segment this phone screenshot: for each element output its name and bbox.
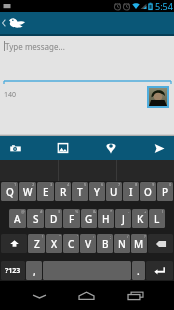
button[interactable]: H — [98, 209, 114, 228]
staticText: A — [14, 212, 21, 226]
button[interactable]: Profile photo — [149, 88, 167, 106]
staticText: J — [122, 212, 125, 226]
staticText: : — [93, 234, 95, 239]
staticText: Type message... — [5, 41, 65, 52]
staticText: " — [59, 234, 61, 239]
staticText: . — [137, 264, 140, 278]
staticText: X — [51, 237, 58, 251]
staticText: ?123 — [5, 266, 21, 276]
staticText: @ — [21, 209, 25, 214]
staticText: & — [93, 209, 96, 214]
staticText: Y — [94, 185, 100, 199]
staticText: F — [69, 212, 75, 226]
staticText: H — [102, 212, 110, 226]
button[interactable]: A — [9, 209, 26, 228]
button[interactable]: Send — [144, 136, 174, 160]
staticText: C — [68, 237, 75, 251]
staticText: P — [162, 185, 169, 199]
staticText: 5:54 — [155, 0, 173, 12]
button[interactable]: P — [157, 182, 173, 201]
button[interactable]: D — [45, 209, 62, 228]
staticText: ? — [144, 234, 146, 239]
button[interactable]: L — [149, 209, 165, 228]
staticText: N — [118, 237, 126, 251]
button[interactable]: S — [27, 209, 44, 228]
button[interactable]: Home — [72, 281, 100, 310]
button[interactable]: V — [80, 234, 96, 253]
button[interactable]: X — [46, 234, 62, 253]
staticText: M — [134, 237, 144, 251]
staticText: / — [127, 234, 129, 239]
button[interactable]: M — [131, 234, 147, 253]
button[interactable]: Back — [25, 281, 53, 310]
staticText: ( — [162, 209, 164, 214]
staticText: W — [23, 185, 33, 199]
staticText: 3 — [50, 182, 53, 187]
button[interactable]: . — [132, 261, 145, 280]
staticText: S — [33, 212, 39, 226]
staticText: B — [102, 237, 109, 251]
staticText: I — [129, 185, 133, 199]
staticText: 7 — [118, 182, 121, 187]
button[interactable]: Photo — [48, 136, 78, 160]
button[interactable]: B — [97, 234, 113, 253]
staticText: D — [50, 212, 58, 226]
staticText: 9 — [152, 182, 155, 187]
button[interactable]: U — [106, 182, 122, 201]
staticText: 4 — [67, 182, 70, 187]
staticText: % — [75, 209, 79, 214]
button[interactable]: G — [81, 209, 97, 228]
staticText: O — [144, 185, 152, 199]
button[interactable]: O — [140, 182, 156, 201]
staticText: Z — [34, 237, 40, 251]
button[interactable]: E — [37, 182, 54, 201]
button[interactable]: W — [19, 182, 36, 201]
staticText: Q — [6, 185, 14, 199]
staticText: L — [154, 212, 160, 226]
button[interactable]: Up — [0, 12, 174, 34]
staticText: E — [43, 185, 49, 199]
button[interactable]: F — [63, 209, 80, 228]
button[interactable]: J — [115, 209, 131, 228]
staticText: ' — [77, 234, 78, 239]
button[interactable]: ?123 — [1, 261, 25, 280]
staticText: # — [40, 209, 43, 214]
staticText: 6 — [101, 182, 104, 187]
staticText: $ — [58, 209, 61, 214]
button[interactable]: Q — [1, 182, 18, 201]
button[interactable]: Recents — [121, 281, 149, 310]
button[interactable]: Camera — [0, 136, 30, 160]
staticText: 1 — [14, 182, 17, 187]
staticText: U — [110, 185, 118, 199]
button[interactable]: Enter — [146, 261, 173, 280]
staticText: T — [77, 185, 83, 199]
button[interactable]: Z — [28, 234, 45, 253]
staticText: - — [128, 209, 130, 214]
staticText: 8 — [135, 182, 138, 187]
staticText: * — [110, 209, 113, 214]
staticText: 5 — [84, 182, 87, 187]
staticText: G — [85, 212, 93, 226]
button[interactable]: K — [132, 209, 148, 228]
staticText: , — [33, 264, 36, 278]
button[interactable]: Y — [89, 182, 105, 201]
button[interactable]: Location — [96, 136, 126, 160]
button[interactable]: Shift — [1, 234, 27, 253]
button[interactable]: , — [26, 261, 42, 280]
staticText: ! — [42, 234, 44, 239]
staticText: 2 — [32, 182, 35, 187]
staticText: ; — [110, 234, 112, 239]
button[interactable]: R — [55, 182, 71, 201]
button[interactable]: N — [114, 234, 130, 253]
button[interactable]: I — [123, 182, 139, 201]
button[interactable]: Backspace — [148, 234, 173, 253]
staticText: 140 — [4, 90, 17, 100]
button[interactable]: T — [72, 182, 88, 201]
staticText: V — [85, 237, 92, 251]
button[interactable]: C — [63, 234, 79, 253]
staticText: R — [60, 185, 67, 199]
